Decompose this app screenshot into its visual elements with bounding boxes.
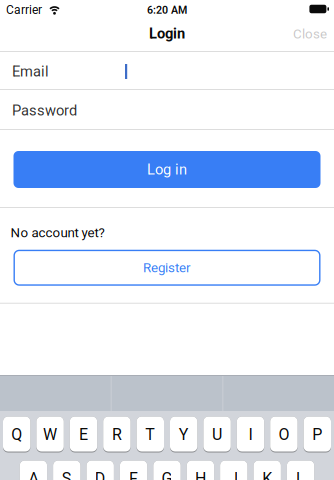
staticText: Login [149,25,185,42]
staticText: H [195,469,206,480]
staticText: A [28,469,38,480]
staticText: Q [11,425,22,444]
button[interactable]: O [270,416,298,452]
button[interactable]: R [103,416,131,452]
staticText: K [262,469,272,480]
staticText: P [312,425,322,444]
button[interactable]: Email [0,52,334,89]
button[interactable]: W [36,416,64,452]
staticText: T [145,425,155,444]
button[interactable]: Log in [0,151,334,188]
button[interactable]: A [20,460,47,480]
button[interactable]: Y [170,416,197,452]
button[interactable]: F [120,460,147,480]
button[interactable]: U [203,416,231,452]
staticText: F [129,469,138,480]
staticText: I [248,425,252,444]
button[interactable]: I [237,416,264,452]
staticText: E [79,425,88,444]
staticText: U [212,425,222,444]
button[interactable]: T [137,416,164,452]
staticText: S [62,469,72,480]
staticText: O [278,425,289,444]
button[interactable]: K [253,460,281,480]
staticText: D [95,469,106,480]
button[interactable]: G [153,460,181,480]
staticText: Carrier [6,3,42,17]
staticText: No account yet? [10,225,104,240]
staticText: G [161,469,172,480]
button[interactable]: D [86,460,114,480]
staticText: R [112,425,122,444]
button[interactable]: Register [0,250,334,286]
button[interactable]: Q [3,416,30,452]
staticText: L [296,469,305,480]
button[interactable]: Password [0,90,334,129]
button[interactable]: S [53,460,80,480]
button[interactable]: J [220,460,247,480]
button[interactable]: Close [293,26,334,42]
button[interactable]: E [70,416,97,452]
staticText: Log in [147,161,187,178]
staticText: Y [179,425,189,444]
staticText: Password [12,102,77,119]
staticText: W [43,425,57,444]
staticText: J [229,469,238,480]
button[interactable]: H [187,460,214,480]
staticText: Close [293,26,327,42]
staticText: 6:20 AM [147,4,187,16]
staticText: Register [143,260,191,275]
button[interactable]: L [287,460,314,480]
staticText: Email [12,63,49,80]
button[interactable]: P [304,416,331,452]
